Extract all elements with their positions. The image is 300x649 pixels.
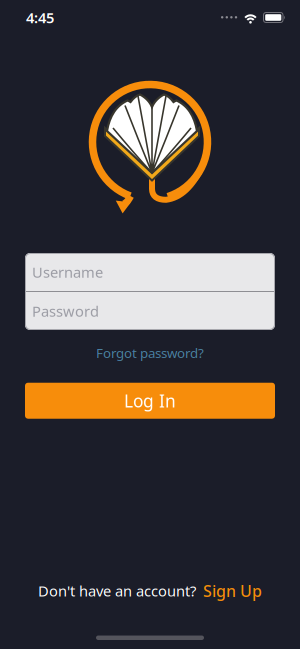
button[interactable]: Password — [25, 292, 275, 330]
staticText: Forgot password? — [96, 344, 204, 362]
button[interactable]: Forgot password? — [96, 344, 204, 362]
button[interactable]: Sign Up — [203, 580, 262, 601]
staticText: 4:45 — [26, 8, 54, 27]
button[interactable]: Log In — [25, 383, 275, 419]
button[interactable]: Username — [25, 253, 275, 291]
staticText: Password — [32, 301, 99, 321]
staticText: Don't have an account? — [38, 581, 196, 601]
staticText: Username — [32, 262, 103, 282]
staticText: Log In — [124, 389, 176, 412]
staticText: Sign Up — [203, 580, 262, 601]
